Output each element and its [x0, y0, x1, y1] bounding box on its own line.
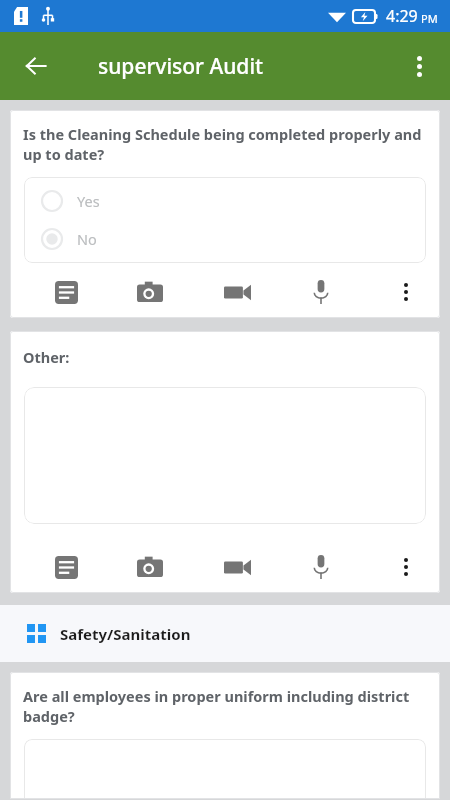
staticText: 4:29 [386, 5, 418, 27]
button[interactable]: Yes [24, 188, 426, 214]
button[interactable]: Add note [48, 550, 84, 584]
staticText: Other: [23, 347, 70, 367]
button[interactable]: Add note [48, 275, 84, 309]
button[interactable]: Safety/Sanitation [0, 605, 450, 662]
staticText: Yes [77, 191, 100, 211]
button[interactable]: Record audio [303, 550, 339, 584]
button[interactable]: Take photo [132, 550, 168, 584]
button[interactable]: More attachment options [388, 275, 424, 309]
button[interactable]: Record video [219, 275, 255, 309]
staticText: Safety/Sanitation [60, 624, 191, 644]
button[interactable]: Record video [219, 550, 255, 584]
staticText: PM [421, 11, 438, 26]
button[interactable]: Take photo [132, 275, 168, 309]
button[interactable]: Back [12, 42, 60, 90]
button[interactable]: More options [396, 43, 442, 89]
staticText: Is the Cleaning Schedule being completed… [23, 124, 424, 165]
button[interactable]: Record audio [303, 275, 339, 309]
button[interactable] [24, 387, 426, 524]
staticText: No [77, 229, 97, 249]
staticText: Are all employees in proper uniform incl… [23, 686, 424, 727]
button[interactable]: More attachment options [388, 550, 424, 584]
staticText: supervisor Audit [98, 52, 264, 81]
button[interactable]: No [24, 226, 426, 252]
